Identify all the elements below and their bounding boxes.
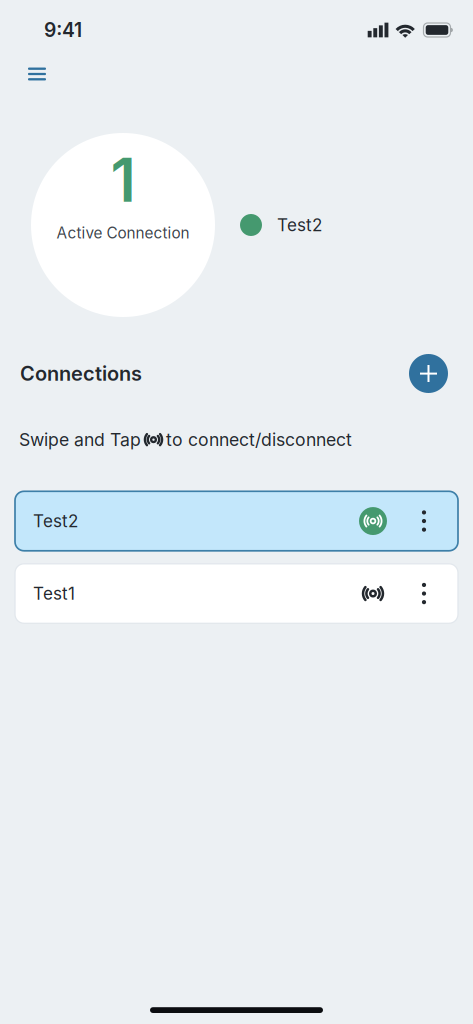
staticText: Active Connection [56,224,189,242]
staticText: Swipe and Tap [19,429,141,450]
staticText: Connections [20,361,142,386]
staticText: 1 [110,144,135,216]
button[interactable]: Menu [20,57,54,91]
staticText: to connect/disconnect [166,429,352,450]
button[interactable]: Add connection [409,354,448,393]
staticText: Test1 [33,583,75,604]
staticText: Test2 [277,215,322,235]
button[interactable]: Test1 [15,564,458,623]
staticText: 9:41 [44,18,82,42]
button[interactable]: Test2 [15,491,458,551]
staticText: Test2 [33,511,78,531]
